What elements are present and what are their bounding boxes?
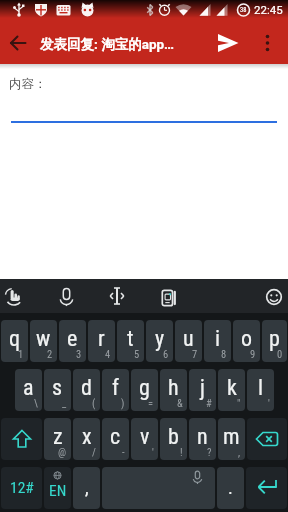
- staticText: 2: [47, 348, 53, 360]
- staticText: m: [223, 424, 240, 450]
- button[interactable]: h: [160, 369, 187, 411]
- staticText: 0: [277, 348, 283, 360]
- staticText: ': [268, 397, 270, 409]
- staticText: EN: [49, 482, 67, 500]
- staticText: &: [177, 397, 183, 409]
- button[interactable]: s: [44, 369, 71, 411]
- button[interactable]: m: [218, 418, 245, 460]
- button[interactable]: [246, 467, 287, 509]
- button[interactable]: t: [117, 320, 144, 362]
- staticText: e: [67, 326, 78, 352]
- button[interactable]: [1, 418, 42, 460]
- staticText: 8: [221, 348, 227, 360]
- staticText: 22:45: [254, 3, 283, 16]
- button[interactable]: j: [189, 369, 216, 411]
- staticText: =: [148, 397, 154, 409]
- staticText: k: [227, 375, 237, 401]
- staticText: c: [110, 424, 121, 450]
- staticText: s: [52, 375, 63, 401]
- staticText: r: [98, 326, 105, 352]
- staticText: q: [9, 326, 21, 352]
- staticText: !: [180, 446, 183, 458]
- staticText: (: [92, 397, 96, 409]
- button[interactable]: .: [217, 467, 244, 509]
- button[interactable]: v: [131, 418, 158, 460]
- button[interactable]: b: [160, 418, 187, 460]
- staticText: 7: [192, 348, 198, 360]
- staticText: 6: [163, 348, 169, 360]
- button[interactable]: o: [233, 320, 260, 362]
- staticText: 5: [134, 348, 140, 360]
- button[interactable]: l: [247, 369, 274, 411]
- staticText: .: [228, 477, 233, 498]
- staticText: a: [23, 375, 34, 401]
- staticText: g: [139, 375, 150, 401]
- staticText: -: [122, 446, 125, 458]
- button[interactable]: q: [1, 320, 28, 362]
- staticText: b: [168, 424, 179, 450]
- staticText: f: [112, 375, 119, 401]
- staticText: /: [92, 446, 96, 458]
- button[interactable]: u: [175, 320, 202, 362]
- button[interactable]: [101, 279, 131, 313]
- staticText: ,: [85, 477, 89, 498]
- button[interactable]: [0, 279, 30, 313]
- staticText: ": [237, 397, 241, 409]
- staticText: x: [82, 424, 92, 450]
- button[interactable]: [8, 92, 280, 126]
- staticText: 12#: [10, 479, 34, 497]
- staticText: p: [269, 326, 280, 352]
- button[interactable]: r: [88, 320, 115, 362]
- button[interactable]: i: [204, 320, 231, 362]
- button[interactable]: [208, 24, 248, 64]
- staticText: 内容：: [9, 76, 47, 92]
- staticText: ): [121, 397, 125, 409]
- button[interactable]: f: [102, 369, 129, 411]
- staticText: _: [62, 397, 67, 409]
- staticText: 38: [240, 6, 247, 14]
- button[interactable]: [153, 279, 183, 313]
- staticText: j: [200, 375, 205, 401]
- staticText: w: [36, 326, 51, 352]
- button[interactable]: p: [262, 320, 287, 362]
- button[interactable]: n: [189, 418, 216, 460]
- button[interactable]: [258, 279, 288, 313]
- button[interactable]: [247, 418, 287, 460]
- button[interactable]: y: [146, 320, 173, 362]
- staticText: z: [53, 424, 63, 450]
- button[interactable]: 12#: [1, 467, 42, 509]
- button[interactable]: z: [44, 418, 71, 460]
- button[interactable]: EN: [44, 467, 71, 509]
- staticText: ,: [238, 446, 241, 458]
- button[interactable]: a: [15, 369, 42, 411]
- staticText: 4: [105, 348, 111, 360]
- button[interactable]: [51, 279, 81, 313]
- button[interactable]: [102, 467, 215, 509]
- staticText: \: [34, 397, 38, 409]
- staticText: t: [127, 326, 134, 352]
- staticText: ': [152, 446, 154, 458]
- staticText: u: [183, 326, 194, 352]
- button[interactable]: w: [30, 320, 57, 362]
- button[interactable]: e: [59, 320, 86, 362]
- staticText: h: [168, 375, 179, 401]
- staticText: v: [140, 424, 150, 450]
- button[interactable]: ,: [73, 467, 100, 509]
- staticText: 9: [250, 348, 256, 360]
- button[interactable]: x: [73, 418, 100, 460]
- staticText: ?: [207, 446, 212, 458]
- staticText: l: [258, 375, 264, 401]
- staticText: 发表回复: 淘宝的app…: [40, 36, 210, 53]
- staticText: n: [197, 424, 208, 450]
- staticText: #: [206, 397, 212, 409]
- button[interactable]: c: [102, 418, 129, 460]
- staticText: d: [81, 375, 92, 401]
- button[interactable]: d: [73, 369, 100, 411]
- button[interactable]: k: [218, 369, 245, 411]
- button[interactable]: g: [131, 369, 158, 411]
- staticText: 3: [76, 348, 82, 360]
- button[interactable]: [0, 24, 36, 64]
- staticText: y: [155, 326, 165, 352]
- staticText: i: [215, 326, 221, 352]
- button[interactable]: [252, 24, 288, 64]
